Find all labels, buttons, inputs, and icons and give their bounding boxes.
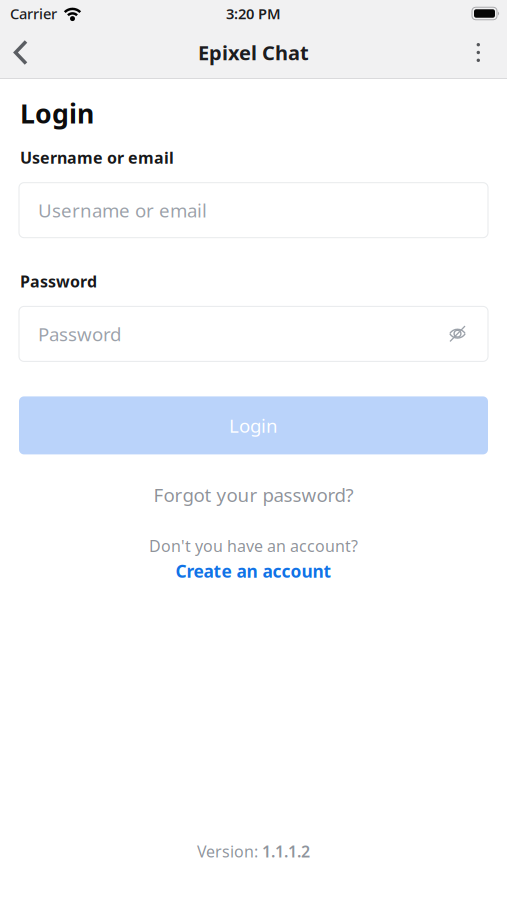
button[interactable]: Show password	[448, 325, 488, 343]
staticText: Login	[229, 413, 278, 438]
button[interactable]: Create an account	[19, 559, 488, 582]
button[interactable]: Login	[19, 396, 488, 454]
staticText: Password	[38, 321, 121, 346]
staticText: Version:	[197, 841, 262, 862]
staticText: Don't you have an account?	[149, 535, 358, 556]
button[interactable]: Back	[0, 29, 43, 75]
button[interactable]: More options	[461, 29, 507, 75]
staticText: Carrier	[10, 4, 57, 23]
staticText: Username or email	[38, 198, 207, 223]
staticText: Username or email	[20, 147, 174, 168]
staticText: Login	[20, 95, 94, 131]
staticText: Create an account	[175, 559, 331, 582]
staticText: 3:20 PM	[226, 4, 281, 23]
staticText: 1.1.1.2	[262, 841, 310, 862]
button[interactable]: Forgot your password?	[19, 482, 488, 507]
staticText: Forgot your password?	[153, 482, 353, 507]
staticText: Epixel Chat	[198, 39, 309, 66]
staticText: Password	[20, 271, 97, 292]
